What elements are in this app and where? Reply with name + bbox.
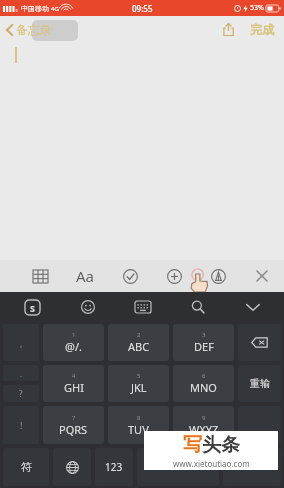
staticText: TUV bbox=[128, 422, 149, 437]
staticText: 1 bbox=[72, 331, 76, 339]
staticText: 9 bbox=[202, 414, 206, 422]
staticText: 53% bbox=[250, 3, 264, 13]
button[interactable]: 6 bbox=[173, 365, 234, 402]
button[interactable]: Language bbox=[53, 448, 91, 486]
button[interactable]: 8 bbox=[108, 406, 169, 444]
staticText: , bbox=[20, 337, 23, 349]
staticText: @/. bbox=[65, 339, 82, 354]
staticText: PQRS bbox=[59, 422, 88, 437]
button[interactable]: 9 bbox=[173, 406, 234, 444]
staticText: 09:55 bbox=[132, 3, 153, 14]
button[interactable]: Add attachment bbox=[152, 260, 196, 292]
staticText: 写 bbox=[183, 433, 202, 457]
staticText: 完成 bbox=[250, 22, 274, 37]
staticText: 4G bbox=[51, 5, 59, 13]
button[interactable]: ? bbox=[3, 385, 39, 402]
staticText: 8 bbox=[137, 414, 141, 422]
button[interactable]: 123 bbox=[95, 448, 133, 486]
button[interactable]: Text style bbox=[63, 260, 108, 292]
staticText: 备忘录 bbox=[16, 22, 52, 37]
button[interactable]: Sogou input bbox=[4, 292, 60, 322]
button[interactable]: Share bbox=[219, 19, 238, 40]
button[interactable]: 5 bbox=[108, 365, 169, 402]
staticText: WXYZ bbox=[189, 422, 219, 437]
staticText: www.xietoutiao.com bbox=[173, 458, 250, 469]
button[interactable]: 备忘录 bbox=[0, 19, 60, 40]
button[interactable]: ! bbox=[3, 406, 39, 444]
staticText: Aa bbox=[76, 266, 95, 286]
button[interactable]: Checklist bbox=[108, 260, 152, 292]
staticText: ? bbox=[19, 388, 23, 399]
button[interactable]: 7 bbox=[43, 406, 104, 444]
button[interactable]: Draw bbox=[196, 260, 240, 292]
staticText: S bbox=[30, 302, 35, 314]
staticText: ABC bbox=[128, 339, 150, 354]
button[interactable]: Enter bbox=[223, 448, 281, 486]
staticText: 中国移动 bbox=[21, 4, 49, 13]
button[interactable]: 4 bbox=[43, 365, 104, 402]
staticText: 3 bbox=[202, 331, 206, 339]
button[interactable]: Hide keyboard bbox=[225, 292, 280, 322]
button[interactable]: Keyboard layout bbox=[115, 292, 170, 322]
button[interactable]: Close keyboard bbox=[240, 260, 284, 292]
button[interactable]: Space bbox=[137, 448, 219, 486]
staticText: MNO bbox=[190, 380, 217, 395]
staticText: 头条 bbox=[202, 433, 240, 457]
staticText: 2 bbox=[137, 331, 141, 339]
staticText: 5 bbox=[137, 372, 141, 380]
button[interactable]: Table bbox=[18, 260, 63, 292]
button[interactable]: 符 bbox=[3, 448, 49, 486]
button[interactable]: 1 bbox=[43, 324, 104, 361]
staticText: DEF bbox=[194, 339, 214, 354]
staticText: JKL bbox=[131, 380, 147, 395]
staticText: ! bbox=[20, 419, 23, 431]
button[interactable]: 完成 bbox=[246, 18, 278, 41]
staticText: 4 bbox=[72, 372, 76, 380]
staticText: 123 bbox=[105, 460, 123, 474]
button[interactable]: 2 bbox=[108, 324, 169, 361]
staticText: 6 bbox=[202, 372, 206, 380]
button[interactable]: 3 bbox=[173, 324, 234, 361]
staticText: . bbox=[20, 368, 23, 379]
staticText: 符 bbox=[21, 460, 32, 474]
staticText: 7 bbox=[72, 414, 76, 422]
staticText: 重输 bbox=[250, 377, 270, 390]
staticText: GHI bbox=[64, 380, 84, 395]
button[interactable]: 重输 bbox=[238, 365, 281, 402]
button[interactable]: Enter bbox=[238, 406, 281, 444]
button[interactable]: Backspace bbox=[238, 324, 281, 361]
button[interactable]: Search bbox=[170, 292, 225, 322]
button[interactable]: Emoji bbox=[60, 292, 115, 322]
